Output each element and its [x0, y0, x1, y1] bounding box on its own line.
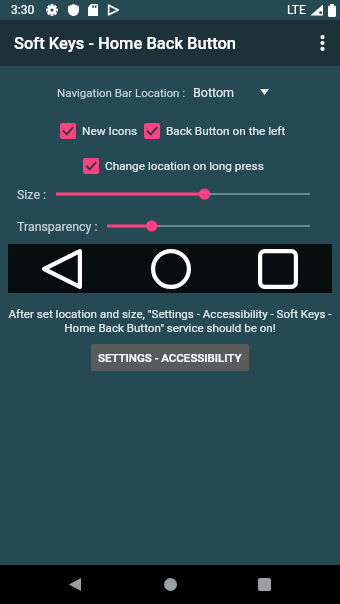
- staticText: SETTINGS - ACCESSIBILITY: [98, 351, 242, 364]
- staticText: After set location and size, "Settings -…: [7, 307, 333, 335]
- button[interactable]: [56, 183, 310, 205]
- staticText: Navigation Bar Location :: [57, 86, 186, 99]
- button[interactable]: Bottom: [193, 81, 283, 103]
- staticText: Back Button on the left: [166, 124, 286, 138]
- button[interactable]: Recents: [250, 570, 278, 598]
- button[interactable]: New Icons: [60, 123, 138, 139]
- staticText: 3:30: [11, 3, 35, 17]
- button[interactable]: Back Button on the left: [144, 123, 286, 139]
- button[interactable]: Recents: [258, 249, 298, 289]
- staticText: Soft Keys - Home Back Button: [14, 34, 237, 53]
- button[interactable]: Change location on long press: [83, 158, 264, 174]
- button[interactable]: Home: [156, 570, 184, 598]
- staticText: LTE: [287, 3, 306, 17]
- button[interactable]: [107, 215, 310, 237]
- button[interactable]: More options: [306, 20, 338, 66]
- staticText: Transparency :: [17, 219, 98, 234]
- staticText: New Icons: [82, 124, 138, 138]
- button[interactable]: Back: [41, 249, 82, 289]
- button[interactable]: SETTINGS - ACCESSIBILITY: [91, 344, 249, 371]
- staticText: Bottom: [193, 85, 235, 100]
- button[interactable]: Back: [61, 570, 89, 598]
- staticText: Change location on long press: [105, 159, 264, 173]
- button[interactable]: Home: [151, 249, 191, 289]
- staticText: Size :: [17, 187, 47, 202]
